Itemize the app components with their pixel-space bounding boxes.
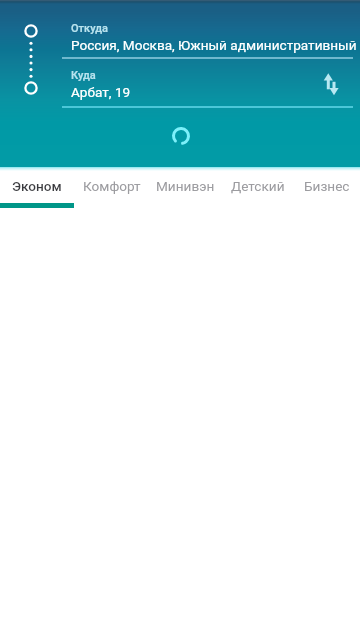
button[interactable]: Минивэн — [149, 167, 222, 208]
staticText: Россия, Москва, Южный административный — [71, 37, 357, 53]
staticText: Минивэн — [156, 178, 215, 194]
staticText: Откуда — [71, 22, 108, 35]
button[interactable]: Откуда — [62, 15, 353, 59]
staticText: Бизнес — [304, 178, 350, 194]
button[interactable]: Куда — [62, 64, 353, 108]
button[interactable]: Swap pickup and destination — [315, 69, 345, 99]
staticText: Эконом — [12, 178, 62, 194]
button[interactable]: Бизнес — [294, 167, 360, 208]
button[interactable]: Детский — [222, 167, 294, 208]
staticText: Куда — [71, 69, 96, 82]
staticText: Детский — [231, 178, 285, 194]
other: Searching for rides — [172, 127, 190, 145]
button[interactable]: Эконом — [0, 167, 74, 208]
button[interactable]: Комфорт — [74, 167, 149, 208]
staticText: Арбат, 19 — [71, 84, 131, 100]
staticText: Комфорт — [83, 178, 141, 194]
